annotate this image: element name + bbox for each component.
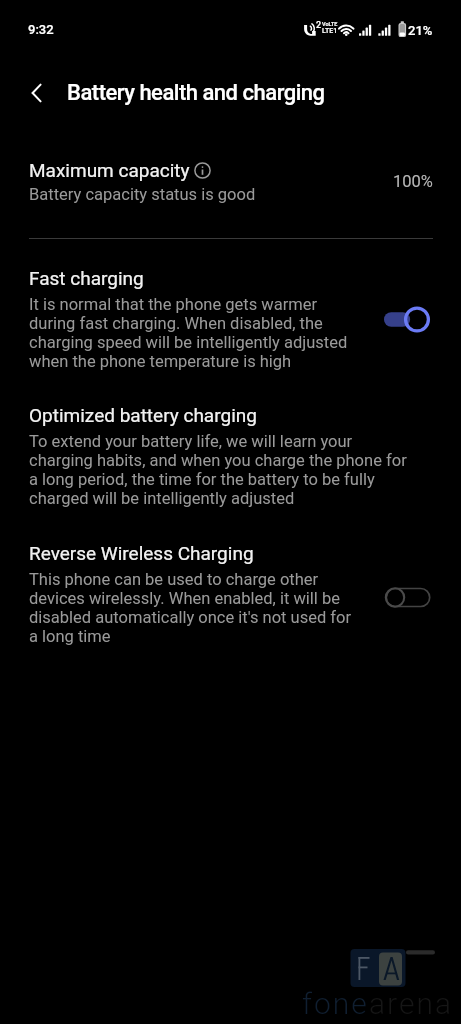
staticText: Battery health and charging	[67, 80, 325, 106]
staticText: Reverse Wireless Charging	[29, 542, 254, 564]
button[interactable]: Reverse Wireless Charging	[0, 542, 461, 646]
button[interactable]: Fast charging toggle	[384, 306, 430, 333]
staticText: 100%	[393, 172, 433, 191]
staticText: 2	[316, 20, 322, 31]
staticText: 9:32	[28, 22, 54, 37]
button[interactable]: Fast charging	[0, 267, 461, 371]
staticText: Fast charging	[29, 267, 144, 289]
staticText: It is normal that the phone gets warmer …	[29, 295, 359, 371]
button[interactable]: Reverse wireless charging toggle	[385, 587, 431, 608]
staticText: fone	[302, 986, 369, 1021]
staticText: This phone can be used to charge other d…	[29, 570, 359, 646]
button[interactable]: Maximum capacity	[29, 159, 433, 204]
staticText: Optimized battery charging	[29, 404, 257, 426]
staticText: 21%	[408, 23, 433, 38]
staticText: LTE1	[322, 27, 338, 35]
staticText: Maximum capacity	[29, 159, 190, 181]
staticText: VoLTE	[322, 21, 338, 27]
staticText: Battery capacity status is good	[29, 185, 256, 204]
staticText: arena	[369, 986, 454, 1021]
staticText: To extend your battery life, we will lea…	[29, 432, 409, 508]
button[interactable]: Optimized battery charging	[29, 404, 409, 508]
button[interactable]: Back	[0, 69, 73, 117]
